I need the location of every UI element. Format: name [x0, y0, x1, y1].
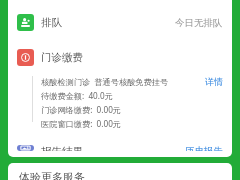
staticText: 医院窗口缴费: 0.00元	[41, 118, 122, 129]
button[interactable]: 报告结果	[8, 139, 232, 157]
staticText: 门诊网络缴费: 0.00元	[41, 104, 122, 115]
staticText: 排队	[41, 16, 62, 29]
staticText: 待缴费金额: 40.0元	[41, 90, 113, 101]
staticText: 核酸检测门诊 普通号核酸免费挂号	[41, 76, 169, 87]
button[interactable]: 核酸检测门诊 普通号核酸免费挂号	[8, 76, 232, 129]
staticText: 门诊缴费	[41, 51, 83, 64]
button[interactable]: 详情	[201, 76, 223, 87]
staticText: 今日无排队	[175, 17, 223, 29]
button[interactable]: 排队	[8, 8, 232, 37]
staticText: 详情	[205, 76, 223, 87]
staticText: 历史报告	[185, 145, 223, 151]
staticText: 体验更多服务	[19, 170, 85, 180]
button[interactable]: 门诊缴费	[8, 43, 232, 72]
button[interactable]: 体验更多服务	[8, 163, 232, 180]
staticText: 报告结果	[41, 145, 83, 151]
